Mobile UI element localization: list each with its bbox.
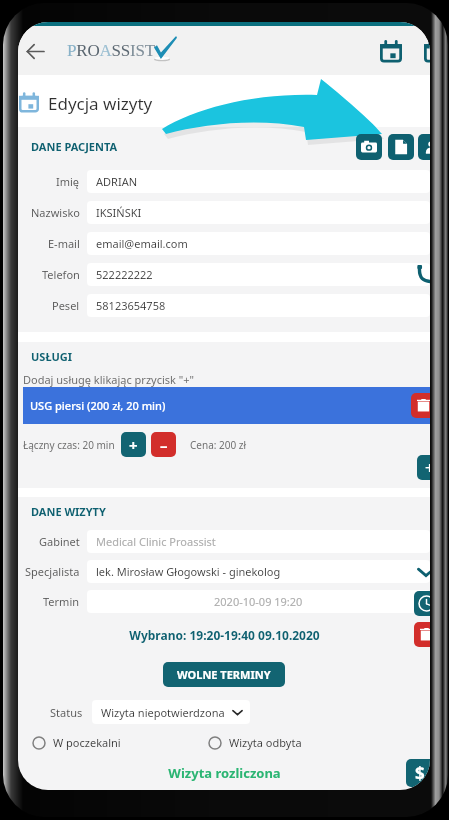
staticText: Dodaj usługę klikając przycisk "+": [23, 372, 195, 387]
button[interactable]: Add minutes: [121, 432, 146, 457]
staticText: –: [160, 435, 168, 455]
button[interactable]: Take photo: [356, 134, 382, 160]
staticText: USG piersi (200 zł, 20 min): [30, 398, 166, 413]
button[interactable]: Calendar: [380, 41, 402, 63]
button[interactable]: Documents: [388, 134, 414, 160]
button[interactable]: Back: [18, 31, 55, 71]
staticText: W poczekalni: [53, 735, 121, 750]
button[interactable]: 522222222: [87, 263, 430, 286]
staticText: Status: [50, 705, 83, 720]
staticText: Wizyta rozliczona: [168, 764, 281, 782]
staticText: Imię: [56, 174, 80, 189]
staticText: Nazwisko: [31, 205, 80, 220]
button[interactable]: Payments: [406, 759, 430, 787]
staticText: email@email.com: [96, 236, 188, 251]
button[interactable]: lek. Mirosław Głogowski - ginekolog: [87, 560, 430, 583]
staticText: Termin: [43, 594, 80, 609]
button[interactable]: Call: [417, 265, 430, 283]
staticText: IKSIŃSKI: [96, 205, 142, 220]
staticText: Specjalista: [25, 564, 80, 579]
button[interactable]: 58123654758: [87, 294, 430, 317]
staticText: Pesel: [52, 298, 80, 313]
staticText: WOLNE TERMINY: [177, 667, 271, 682]
staticText: +: [129, 435, 138, 455]
button[interactable]: Medical Clinic Proassist: [87, 530, 430, 553]
button[interactable]: Patient card: [418, 134, 430, 160]
staticText: Łączny czas: 20 min: [23, 438, 115, 452]
staticText: +: [425, 457, 430, 479]
button[interactable]: Delete service: [411, 393, 430, 418]
staticText: PROASSIST: [67, 41, 155, 60]
staticText: E-mail: [48, 236, 80, 251]
staticText: Cena: 200 zł: [190, 438, 247, 452]
staticText: Medical Clinic Proassist: [96, 534, 216, 549]
staticText: DANE WIZYTY: [31, 504, 106, 519]
staticText: 522222222: [96, 267, 153, 282]
staticText: Wizyta odbyta: [229, 735, 302, 750]
staticText: Wizyta niepotwierdzona: [101, 705, 225, 720]
staticText: 2020-10-09 19:20: [214, 594, 303, 609]
staticText: lek. Mirosław Głogowski - ginekolog: [96, 564, 281, 579]
button[interactable]: Pick time: [414, 591, 430, 616]
button[interactable]: Remove minutes: [151, 432, 176, 457]
button[interactable]: Choose specialist: [417, 563, 430, 581]
staticText: Edycja wizyty: [48, 92, 153, 115]
button[interactable]: Add service: [417, 455, 430, 480]
staticText: USŁUGI: [31, 349, 73, 364]
staticText: ADRIAN: [96, 174, 138, 189]
button[interactable]: 2020-10-09 19:20: [87, 590, 430, 613]
button[interactable]: W poczekalni: [32, 735, 121, 750]
staticText: DANE PACJENTA: [31, 139, 118, 154]
staticText: Telefon: [42, 267, 80, 282]
staticText: 58123654758: [96, 298, 166, 313]
button[interactable]: ADRIAN: [87, 170, 430, 193]
button[interactable]: Wizyta odbyta: [208, 735, 302, 750]
button[interactable]: email@email.com: [87, 232, 430, 255]
staticText: $: [415, 762, 425, 785]
button[interactable]: Wizyta niepotwierdzona: [92, 700, 250, 724]
staticText: Gabinet: [39, 534, 80, 549]
button[interactable]: USG piersi (200 zł, 20 min): [23, 387, 430, 424]
button[interactable]: Menu: [424, 41, 430, 63]
button[interactable]: WOLNE TERMINY: [163, 662, 285, 687]
button[interactable]: Clear term: [414, 622, 430, 647]
staticText: Wybrano: 19:20-19:40 09.10.2020: [129, 627, 320, 643]
button[interactable]: IKSIŃSKI: [87, 201, 430, 224]
